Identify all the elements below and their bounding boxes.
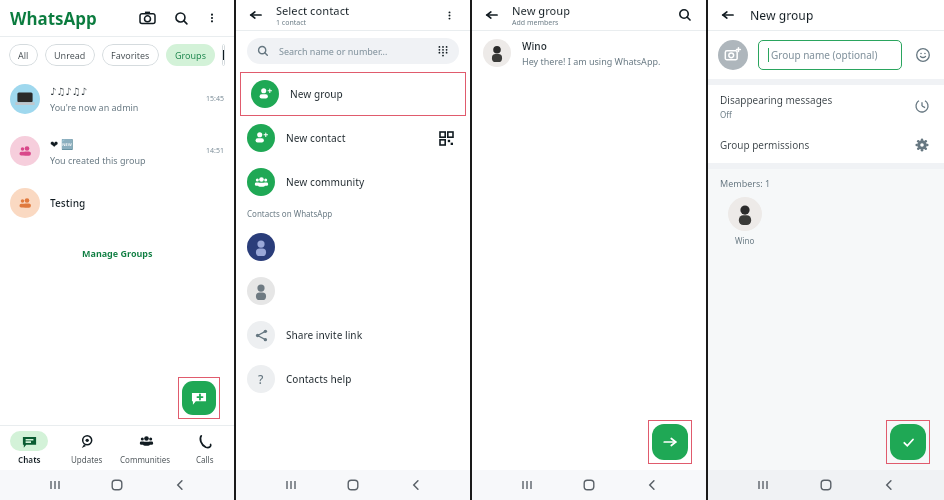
staticText: Hey there! I am using WhatsApp. [522, 55, 661, 67]
button[interactable] [236, 269, 470, 313]
button[interactable]: Group permissions [708, 127, 944, 163]
staticText: Communities [120, 454, 171, 465]
button[interactable]: More options [438, 4, 460, 26]
staticText: Share invite link [286, 328, 363, 342]
staticText: Groups [175, 49, 206, 61]
button[interactable]: All [9, 44, 38, 66]
staticText: Favorites [111, 49, 150, 61]
staticText: WhatsApp [10, 7, 97, 30]
button[interactable]: Updates [58, 426, 116, 470]
staticText: Group name (optional) [771, 48, 878, 62]
button[interactable]: Share invite link [236, 313, 470, 357]
staticText: Updates [71, 454, 103, 465]
button[interactable]: New group [240, 72, 466, 116]
button[interactable]: Communities [116, 426, 175, 470]
button[interactable]: Wino [728, 197, 762, 246]
staticText: Wino [735, 235, 755, 246]
staticText: Search name or number... [279, 45, 437, 57]
staticText: You created this group [50, 154, 146, 166]
button[interactable]: Scan QR code [436, 128, 456, 148]
button[interactable]: ? [236, 357, 470, 401]
staticText: Disappearing messages [720, 93, 833, 107]
button[interactable]: Calls [175, 426, 234, 470]
staticText: Testing [50, 196, 86, 210]
staticText: New group [290, 87, 343, 101]
staticText: Unread [54, 49, 86, 61]
staticText: Chats [18, 454, 41, 465]
button[interactable]: Wino [472, 31, 706, 75]
button[interactable]: New chat [182, 381, 216, 415]
staticText: 1 contact [276, 18, 307, 28]
staticText: Manage Groups [82, 247, 153, 259]
staticText: Group permissions [720, 138, 810, 152]
staticText: You're now an admin [50, 101, 139, 113]
staticText: Calls [196, 454, 214, 465]
button[interactable]: Group name (optional) [758, 40, 902, 70]
button[interactable]: Back [718, 5, 738, 25]
staticText: ? [258, 371, 264, 387]
staticText: Contacts help [286, 372, 352, 386]
button[interactable]: Create group [890, 424, 926, 460]
staticText: New community [286, 175, 365, 189]
button[interactable]: Favorites [102, 44, 159, 66]
staticText: Members: 1 [720, 177, 771, 189]
button[interactable]: Manage Groups [72, 243, 163, 263]
staticText: 14:51 [206, 146, 224, 156]
button[interactable]: Camera [134, 5, 160, 31]
button[interactable]: More options [200, 6, 224, 30]
staticText: Wino [522, 39, 547, 53]
button[interactable]: New contact [236, 116, 436, 160]
button[interactable]: Emoji [912, 44, 934, 66]
button[interactable]: Search name or number... [247, 38, 459, 64]
staticText: 15:45 [206, 94, 224, 104]
button[interactable]: ❤ 🆕 [0, 125, 234, 177]
staticText: New contact [286, 131, 346, 145]
button[interactable]: Add group icon [718, 40, 748, 70]
button[interactable]: Chats [0, 426, 58, 470]
button[interactable]: Testing [0, 177, 234, 229]
button[interactable]: Unread [45, 44, 95, 66]
button[interactable]: Search [168, 5, 194, 31]
staticText: ♪♫♪♫♪ [50, 86, 88, 98]
staticText: All [18, 49, 29, 61]
button[interactable]: New community [236, 160, 470, 204]
staticText: Add members [512, 18, 559, 28]
button[interactable]: Search [674, 4, 696, 26]
button[interactable]: Next [652, 424, 688, 460]
staticText: Off [720, 109, 732, 120]
button[interactable]: Groups [166, 44, 215, 66]
button[interactable]: Back [482, 5, 502, 25]
staticText: New group [512, 3, 571, 18]
staticText: Contacts on WhatsApp [247, 208, 333, 219]
button[interactable]: Disappearing messages [708, 85, 944, 127]
staticText: ❤ 🆕 [50, 137, 74, 151]
staticText: Select contact [276, 3, 350, 18]
button[interactable] [236, 225, 470, 269]
staticText: New group [750, 7, 814, 23]
button[interactable]: ♪♫♪♫♪ [0, 73, 234, 125]
button[interactable]: Add filter [222, 44, 225, 66]
button[interactable]: Back [246, 5, 266, 25]
